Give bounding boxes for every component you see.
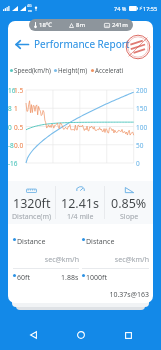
staticText: 16 <box>8 86 16 95</box>
staticText: 0 <box>8 123 12 132</box>
staticText: 1 <box>14 104 18 113</box>
staticText: 1/4 mile <box>67 212 94 222</box>
staticText: Accelerati <box>95 66 124 74</box>
staticText: 8m <box>76 21 86 29</box>
staticText: Distance(m) <box>12 212 52 222</box>
staticText: -16 <box>8 159 18 168</box>
staticText: sec@km/h <box>13 255 79 265</box>
button[interactable]: Distance <box>82 237 149 300</box>
staticText: 0.85% <box>111 195 147 212</box>
staticText: 1000ft <box>86 273 107 283</box>
staticText: 100 <box>136 123 148 132</box>
staticText: 60ft <box>17 273 30 283</box>
staticText: Speed(km/h) <box>14 66 51 74</box>
staticText: vo <box>28 8 32 13</box>
button[interactable]: Recents <box>113 320 143 350</box>
staticText: Distance <box>86 237 115 247</box>
button[interactable]: Back <box>18 320 48 350</box>
button[interactable]: 18℃ <box>29 19 133 31</box>
staticText: sec@km/h <box>82 255 149 265</box>
staticText: 241m <box>112 21 128 29</box>
staticText: 8 <box>8 104 12 113</box>
staticText: 200 <box>136 86 148 95</box>
staticText: Distance <box>17 237 46 247</box>
staticText: 0 <box>136 159 140 168</box>
button[interactable]: Back <box>13 35 31 53</box>
staticText: Slope <box>120 212 139 222</box>
button[interactable]: Distance <box>13 237 79 283</box>
staticText: 1.5 <box>14 86 24 95</box>
staticText: 10.37s@163 <box>82 290 149 300</box>
staticText: Height(m) <box>58 66 88 74</box>
button[interactable]: 1320ft <box>8 181 55 224</box>
staticText: 150 <box>136 104 148 113</box>
staticText: 12.41s <box>61 195 99 212</box>
staticText: 18℃ <box>39 21 52 29</box>
staticText: 4G <box>27 3 32 8</box>
staticText: -8 <box>8 141 14 150</box>
staticText: Performance Report <box>34 37 130 51</box>
staticText: 17:55 <box>143 5 158 12</box>
staticText: 0.5 <box>14 123 24 132</box>
staticText: 0.0 <box>14 141 24 150</box>
button[interactable]: 0.85% <box>105 181 153 224</box>
staticText: 74 % <box>114 5 127 12</box>
staticText: 1320ft <box>13 195 51 212</box>
staticText: ⚡ <box>139 5 143 11</box>
staticText: 50 <box>136 141 144 150</box>
button[interactable]: 12.41s <box>56 181 104 224</box>
button[interactable]: Home <box>66 320 96 350</box>
staticText: 1.88s <box>61 273 79 283</box>
